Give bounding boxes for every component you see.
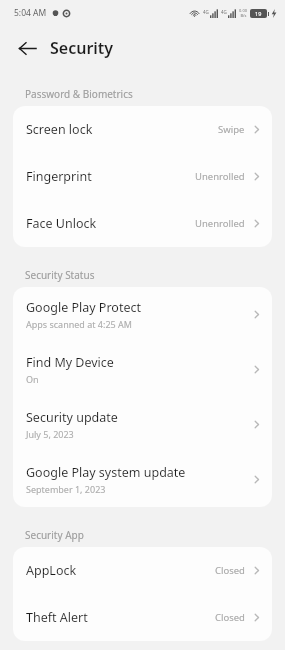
staticText: Find My Device xyxy=(26,354,114,371)
staticText: Security update xyxy=(26,409,118,426)
button[interactable]: Back xyxy=(10,31,44,65)
staticText: September 1, 2023 xyxy=(26,483,106,495)
button[interactable]: AppLock xyxy=(13,547,272,594)
staticText: Password & Biometrics xyxy=(25,87,133,101)
staticText: Closed xyxy=(215,564,245,577)
staticText: Fingerprint xyxy=(26,168,92,185)
staticText: Security xyxy=(50,37,114,59)
staticText: 4G xyxy=(221,9,227,15)
button[interactable]: Find My Device xyxy=(13,342,272,397)
staticText: Unenrolled xyxy=(195,217,245,230)
button[interactable]: Face Unlock xyxy=(13,200,272,247)
staticText: 5:04 AM xyxy=(14,7,47,19)
staticText: 0.00 xyxy=(239,8,247,13)
staticText: Closed xyxy=(215,611,245,624)
button[interactable]: Security update xyxy=(13,397,272,452)
staticText: AppLock xyxy=(26,562,77,579)
button[interactable]: Screen lock xyxy=(13,106,272,153)
button[interactable]: Theft Alert xyxy=(13,594,272,641)
staticText: Theft Alert xyxy=(26,609,88,626)
staticText: Unenrolled xyxy=(195,170,245,183)
staticText: July 5, 2023 xyxy=(26,428,74,440)
staticText: Swipe xyxy=(218,123,245,136)
staticText: 19 xyxy=(255,10,262,17)
staticText: Security Status xyxy=(25,268,95,282)
button[interactable]: Google Play system update xyxy=(13,452,272,507)
staticText: On xyxy=(26,373,39,385)
button[interactable]: Google Play Protect xyxy=(13,287,272,342)
staticText: Google Play system update xyxy=(26,464,186,481)
staticText: Face Unlock xyxy=(26,215,97,232)
button[interactable]: Fingerprint xyxy=(13,153,272,200)
staticText: B/s xyxy=(240,13,247,18)
staticText: 4G xyxy=(203,9,209,15)
staticText: Security App xyxy=(25,528,84,542)
staticText: Screen lock xyxy=(26,121,93,138)
staticText: Google Play Protect xyxy=(26,299,141,316)
staticText: Apps scanned at 4:25 AM xyxy=(26,318,132,330)
